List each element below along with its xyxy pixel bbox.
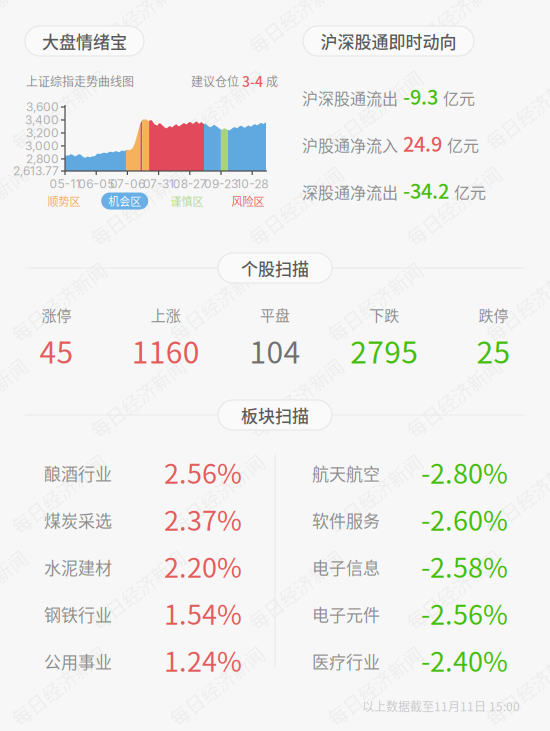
- staticText: 航天航空: [312, 461, 380, 485]
- staticText: 每日经济新闻: [318, 288, 432, 316]
- staticText: 2,613.77: [13, 164, 59, 178]
- staticText: 每日经济新闻: [160, 96, 274, 124]
- staticText: 2.20%: [164, 546, 242, 586]
- staticText: 07-31: [143, 177, 174, 191]
- staticText: 顺势区: [47, 193, 80, 209]
- button[interactable]: 沪深股通即时动向: [303, 26, 474, 56]
- staticText: 07-06: [110, 177, 145, 191]
- staticText: 公用事业: [44, 649, 112, 673]
- staticText: 上涨: [151, 304, 181, 326]
- staticText: 深股通净流出: [302, 180, 398, 203]
- staticText: 09-23: [204, 177, 238, 191]
- staticText: 3-4: [242, 71, 263, 91]
- staticText: 每日经济新闻: [318, 480, 432, 508]
- staticText: -2.80%: [421, 452, 508, 492]
- staticText: -2.56%: [421, 593, 508, 633]
- staticText: 大盘情绪宝: [42, 29, 127, 53]
- staticText: 2795: [350, 329, 418, 372]
- staticText: 钢铁行业: [44, 602, 112, 626]
- staticText: 平盘: [260, 304, 290, 326]
- staticText: -2.40%: [421, 640, 508, 680]
- staticText: -2.60%: [421, 499, 508, 539]
- staticText: 每日经济新闻: [318, 96, 432, 124]
- staticText: -9.3: [398, 81, 443, 110]
- staticText: -34.2: [398, 175, 454, 204]
- staticText: 成: [263, 72, 278, 90]
- staticText: 每日经济新闻: [160, 480, 274, 508]
- staticText: 亿元: [443, 86, 475, 109]
- button[interactable]: 谨慎区: [170, 193, 203, 209]
- staticText: 沪深股通即时动向: [320, 29, 456, 53]
- staticText: 2,800: [26, 152, 59, 166]
- staticText: 45: [40, 329, 74, 372]
- staticText: 每日经济新闻: [2, 96, 116, 124]
- staticText: 涨停: [42, 304, 72, 326]
- staticText: 25: [476, 329, 510, 372]
- staticText: 个股扫描: [241, 256, 309, 280]
- staticText: 上证综指走势曲线图: [26, 72, 134, 90]
- staticText: 3,200: [26, 126, 59, 140]
- staticText: 1160: [132, 329, 200, 372]
- staticText: 风险区: [231, 193, 264, 209]
- staticText: 每日经济新闻: [2, 480, 116, 508]
- staticText: 每日经济新闻: [239, 192, 353, 220]
- staticText: 电子信息: [312, 555, 380, 579]
- staticText: 煤炭采选: [44, 508, 112, 532]
- staticText: 2.56%: [164, 452, 242, 492]
- staticText: 建议仓位: [191, 72, 242, 90]
- staticText: 2.37%: [164, 499, 242, 539]
- staticText: 每日经济新闻: [476, 480, 550, 508]
- button[interactable]: 个股扫描: [218, 253, 332, 283]
- staticText: 每日经济新闻: [81, 576, 195, 604]
- staticText: 亿元: [447, 133, 479, 156]
- staticText: 板块扫描: [241, 403, 309, 427]
- staticText: 10-28: [236, 177, 268, 191]
- staticText: 酿酒行业: [44, 461, 112, 485]
- staticText: 电子元件: [312, 602, 380, 626]
- staticText: 医疗行业: [312, 649, 380, 673]
- staticText: 1.24%: [164, 640, 242, 680]
- staticText: 每日经济新闻: [2, 288, 116, 316]
- staticText: 软件服务: [312, 508, 380, 532]
- staticText: 每日经济新闻: [397, 576, 511, 604]
- button[interactable]: 风险区: [231, 193, 264, 209]
- button[interactable]: 板块扫描: [218, 400, 332, 430]
- staticText: 1.54%: [164, 593, 242, 633]
- staticText: -2.58%: [421, 546, 508, 586]
- staticText: 以上数据截至11月11日 15:00: [362, 697, 520, 715]
- staticText: 每日经济新闻: [160, 288, 274, 316]
- staticText: 104: [249, 329, 300, 372]
- staticText: 每日经济新闻: [239, 576, 353, 604]
- button[interactable]: 顺势区: [47, 193, 80, 209]
- button[interactable]: 大盘情绪宝: [25, 26, 144, 56]
- staticText: 3,400: [25, 113, 59, 127]
- staticText: 06-05: [78, 177, 114, 191]
- staticText: 每日经济新闻: [81, 192, 195, 220]
- staticText: 下跌: [369, 304, 399, 326]
- staticText: 每日经济新闻: [397, 192, 511, 220]
- staticText: 24.9: [398, 128, 447, 157]
- button[interactable]: 机会区: [101, 192, 148, 209]
- staticText: 沪深股通流出: [302, 86, 398, 109]
- staticText: 水泥建材: [44, 555, 112, 579]
- staticText: 亿元: [454, 180, 486, 203]
- staticText: 跌停: [478, 304, 508, 326]
- staticText: 谨慎区: [170, 193, 203, 209]
- staticText: 08-27: [173, 177, 207, 191]
- staticText: 3,000: [25, 139, 59, 153]
- staticText: 3,600: [26, 100, 59, 114]
- staticText: 每日经济新闻: [239, 384, 353, 412]
